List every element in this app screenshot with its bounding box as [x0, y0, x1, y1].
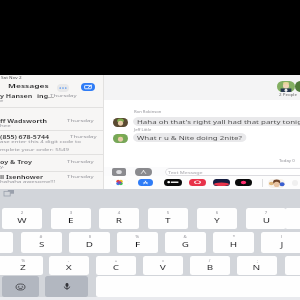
staticText: Haha oh that's right yall had that party…: [137, 118, 300, 126]
button[interactable]: App store: [135, 168, 152, 176]
staticText: D: [86, 240, 93, 249]
staticText: ff Wadsworth: [0, 117, 48, 124]
button[interactable]: y Hansen: [0, 92, 103, 104]
button[interactable]: iMessage app 1: [138, 179, 153, 186]
staticText: Z: [20, 263, 26, 272]
button[interactable]: =: [143, 256, 183, 275]
staticText: -: [68, 259, 70, 263]
staticText: U: [263, 216, 270, 225]
staticText: y Hansen: [0, 92, 32, 99]
button[interactable]: 7: [246, 208, 286, 229]
staticText: ll Isenhower: [0, 173, 44, 180]
staticText: Jeff Little: [134, 128, 152, 132]
staticText: mplete your order: 5549: [0, 147, 70, 153]
button[interactable]: 3: [51, 208, 91, 229]
staticText: H: [230, 240, 237, 249]
staticText: 7: [265, 211, 267, 215]
button[interactable]: ): [261, 232, 300, 253]
button[interactable]: 5: [148, 208, 188, 229]
staticText: Today 0: [279, 159, 296, 163]
staticText: Thursday: [67, 174, 95, 180]
staticText: Thursday: [67, 118, 95, 124]
staticText: 2 People: [279, 93, 297, 97]
button[interactable]: $: [69, 232, 110, 253]
staticText: hee: [0, 123, 12, 129]
staticText: #: [39, 235, 44, 239]
staticText: Ron Robinson: [134, 110, 162, 114]
staticText: Sat Nov 2: [1, 75, 23, 80]
button[interactable]: iMessage app 5: [235, 179, 252, 186]
button[interactable]: 2: [2, 208, 42, 229]
button[interactable]: oy & Troy: [0, 158, 103, 170]
staticText: hahaha awesome!!!: [0, 179, 57, 185]
button[interactable]: #: [21, 232, 62, 253]
button[interactable]: ff Wadsworth: [0, 117, 103, 129]
staticText: J: [280, 240, 283, 249]
staticText: S: [39, 240, 45, 249]
staticText: F: [135, 240, 141, 249]
staticText: What r u & Nite doing 2nite?: [137, 134, 243, 142]
staticText: %: [135, 235, 139, 239]
button[interactable]: ll Isenhower: [0, 173, 103, 185]
staticText: Thursday: [67, 159, 95, 165]
staticText: C: [113, 263, 120, 272]
staticText: (855) 678-5744: [0, 133, 49, 140]
button[interactable]: Camera: [112, 168, 126, 176]
staticText: /: [209, 259, 211, 263]
staticText: W: [17, 216, 28, 225]
staticText: e: [0, 98, 4, 104]
button[interactable]: %: [117, 232, 158, 253]
button[interactable]: (855) 678-5744: [0, 133, 103, 145]
staticText: =: [162, 259, 164, 263]
staticText: 5: [167, 211, 169, 215]
staticText: Text Message: [168, 170, 203, 175]
staticText: 6: [216, 211, 218, 215]
staticText: N: [252, 263, 261, 272]
staticText: ): [281, 235, 282, 239]
button[interactable]: Dictate: [45, 276, 88, 297]
staticText: ;: [257, 259, 258, 263]
button[interactable]: iMessage app 3: [189, 179, 206, 186]
button[interactable]: iMessage app 4: [213, 179, 230, 186]
staticText: Y: [214, 216, 220, 225]
staticText: G: [182, 240, 189, 249]
staticText: T: [165, 216, 171, 225]
staticText: ase enter this 4 digit code to: [0, 139, 81, 145]
staticText: X: [66, 263, 73, 272]
button[interactable]: Emoji: [2, 276, 39, 297]
staticText: E: [68, 216, 74, 225]
staticText: R: [116, 216, 123, 225]
staticText: *: [233, 235, 235, 239]
button[interactable]: &: [165, 232, 206, 253]
button[interactable]: ;: [237, 256, 277, 275]
staticText: 2: [21, 211, 23, 215]
button[interactable]: +: [96, 256, 136, 275]
button[interactable]: Conversation participants: [277, 81, 295, 92]
button[interactable]: %: [3, 256, 43, 275]
staticText: 4: [118, 211, 120, 215]
staticText: ing...: [37, 92, 55, 99]
button[interactable]: Text Message: [165, 168, 300, 176]
button[interactable]: *: [213, 232, 254, 253]
button[interactable]: 4: [99, 208, 139, 229]
staticText: +: [115, 259, 117, 263]
button[interactable]: Memoji: [268, 179, 285, 188]
staticText: &: [183, 235, 187, 239]
staticText: 3: [70, 211, 72, 215]
button[interactable]: /: [190, 256, 230, 275]
staticText: oy & Troy: [0, 158, 32, 165]
staticText: y.: [0, 164, 6, 170]
button[interactable]: More options: [57, 84, 69, 92]
button[interactable]: iMessage app 0: [110, 179, 129, 186]
staticText: %: [21, 259, 25, 263]
staticText: Thursday: [50, 93, 78, 99]
staticText: B: [207, 263, 214, 272]
button[interactable]: New message: [81, 83, 95, 91]
staticText: Thursday: [70, 134, 98, 140]
button[interactable]: 6: [197, 208, 237, 229]
staticText: Messages: [8, 82, 49, 90]
button[interactable]: iMessage app 2: [164, 179, 182, 186]
button[interactable]: -: [49, 256, 89, 275]
staticText: V: [160, 263, 167, 272]
